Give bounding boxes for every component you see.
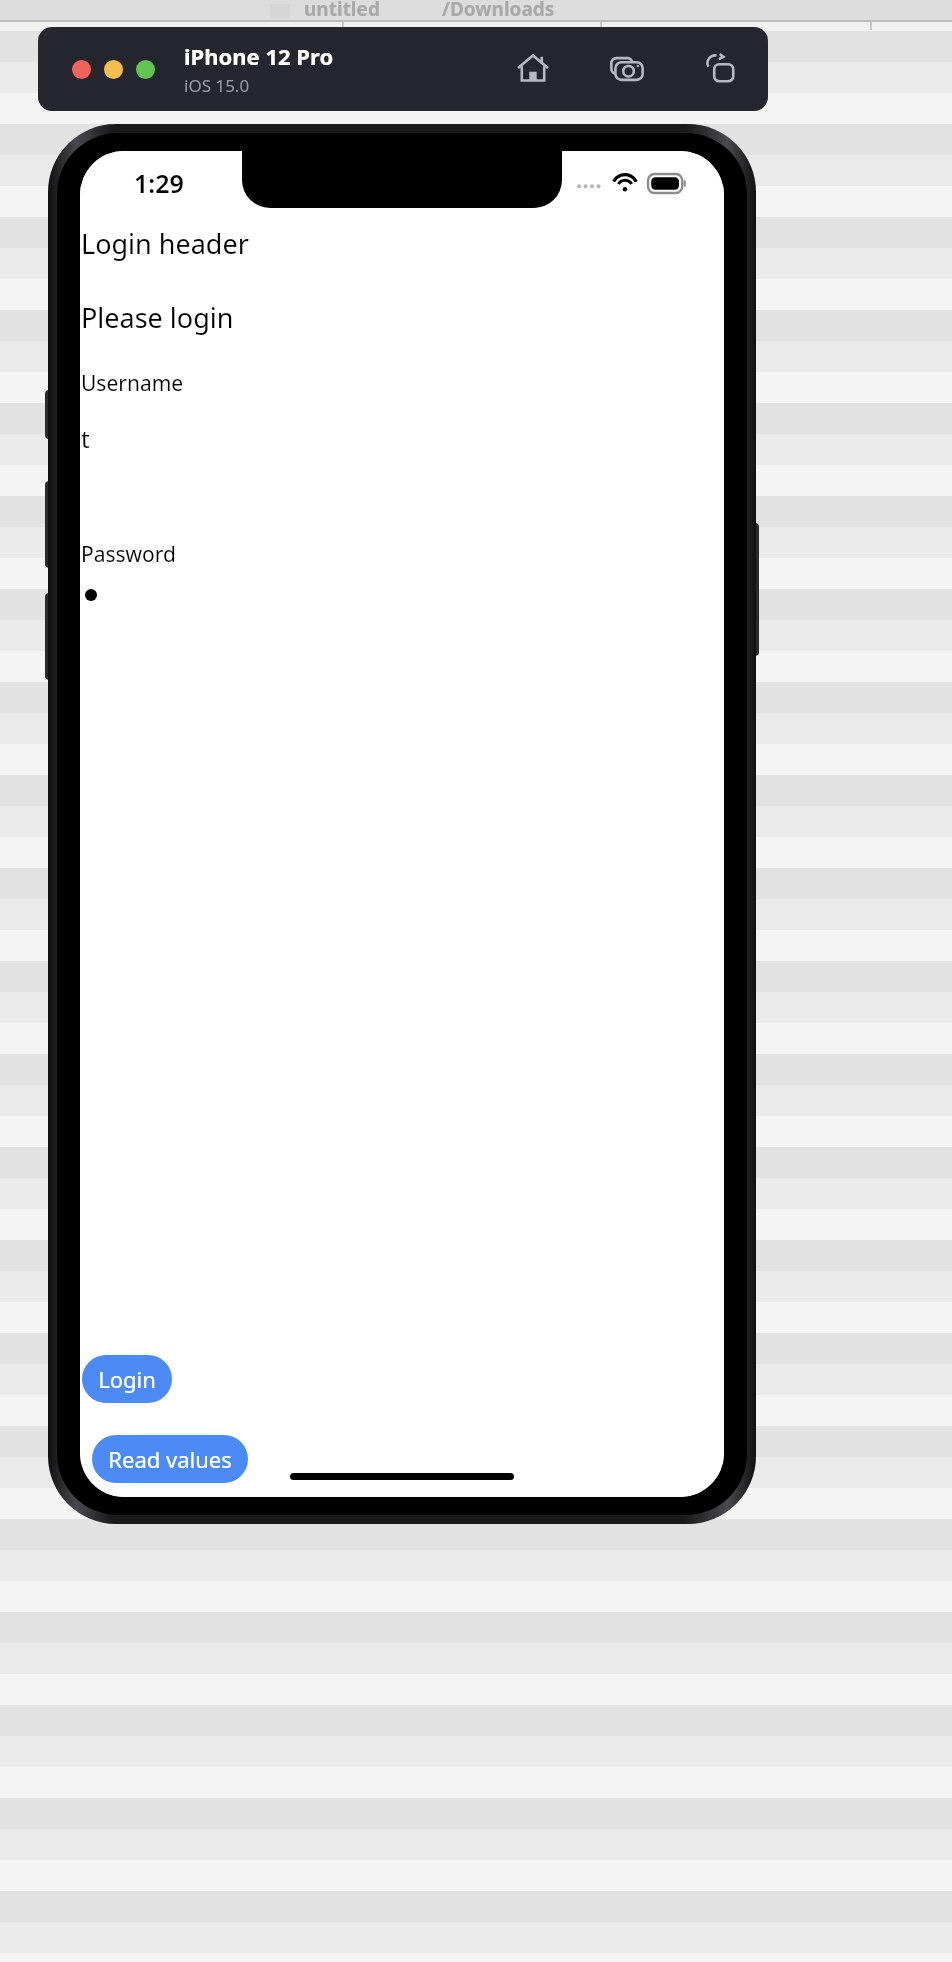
button[interactable]: Read values [92, 1435, 248, 1483]
button[interactable]: Home [510, 46, 556, 92]
staticText: Please login [81, 299, 234, 336]
button[interactable] [81, 585, 724, 625]
staticText: iPhone 12 Pro [184, 41, 334, 71]
button[interactable]: Screenshot [604, 46, 650, 92]
staticText: Login header [81, 225, 249, 262]
staticText: Read values [108, 1444, 232, 1474]
button[interactable]: Rotate [698, 46, 744, 92]
staticText: Login [98, 1364, 156, 1394]
staticText: 1:29 [134, 166, 184, 200]
button[interactable]: t [81, 422, 724, 540]
staticText: Username [81, 369, 184, 398]
staticText: t [81, 422, 90, 455]
staticText: untitled [304, 0, 380, 18]
staticText: iOS 15.0 [184, 74, 250, 97]
button[interactable]: Login [82, 1355, 172, 1403]
staticText: /Downloads [442, 0, 555, 18]
staticText: Password [81, 540, 176, 569]
